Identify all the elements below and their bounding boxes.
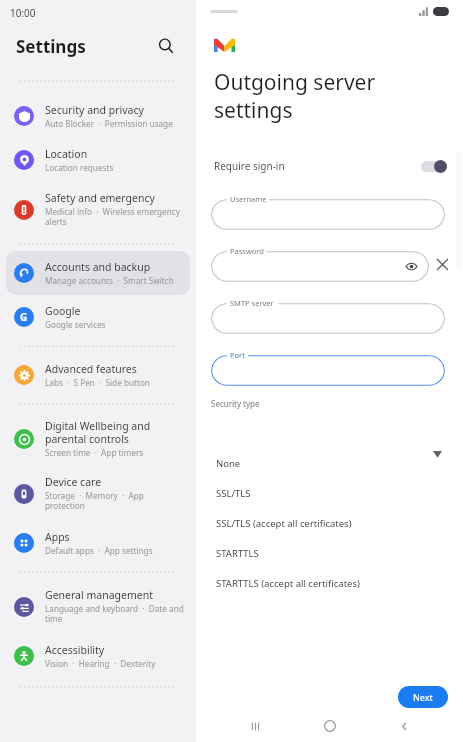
button[interactable]: SSL/TLS (accept all certificates) bbox=[206, 508, 426, 538]
button[interactable]: None bbox=[206, 448, 426, 478]
staticText: Accessibility bbox=[45, 643, 105, 657]
button[interactable]: Digital Wellbeing and parental controls bbox=[6, 411, 190, 466]
button[interactable]: STARTTLS (accept all certificates) bbox=[206, 568, 426, 598]
staticText: Device care bbox=[45, 475, 102, 489]
button[interactable]: Accounts and backup bbox=[6, 251, 190, 295]
button[interactable]: Next bbox=[398, 686, 448, 708]
staticText: Safety and emergency bbox=[45, 191, 155, 205]
staticText: Advanced features bbox=[45, 362, 137, 376]
staticText: Vision · Hearing · Dexterity bbox=[45, 658, 156, 669]
staticText: Auto Blocker · Permission usage bbox=[45, 118, 173, 129]
staticText: Manage accounts · Smart Switch bbox=[45, 275, 174, 286]
staticText: Apps bbox=[45, 530, 70, 544]
staticText: STARTTLS bbox=[216, 547, 259, 560]
staticText: Default apps · App settings bbox=[45, 545, 153, 556]
staticText: Next bbox=[413, 691, 433, 703]
staticText: 10:00 bbox=[10, 6, 36, 20]
staticText: Digital Wellbeing and parental controls bbox=[45, 419, 151, 446]
staticText: STARTTLS (accept all certificates) bbox=[216, 577, 360, 590]
staticText: Location requests bbox=[45, 162, 114, 173]
staticText: Location bbox=[45, 147, 88, 161]
button[interactable] bbox=[211, 251, 429, 282]
staticText: Require sign-in bbox=[214, 159, 285, 173]
staticText: Google bbox=[45, 304, 81, 318]
staticText: Storage · Memory · App protection bbox=[45, 490, 144, 512]
staticText: Port bbox=[230, 350, 245, 360]
button[interactable] bbox=[211, 199, 445, 230]
staticText: SMTP server bbox=[230, 298, 274, 308]
button[interactable]: Recents bbox=[240, 711, 270, 741]
button[interactable]: Home bbox=[315, 711, 345, 741]
staticText: G bbox=[20, 310, 28, 324]
staticText: Labs · S Pen · Side button bbox=[45, 377, 150, 388]
staticText: None bbox=[216, 457, 241, 470]
staticText: Security type bbox=[211, 398, 260, 409]
staticText: Security and privacy bbox=[45, 103, 144, 117]
button[interactable]: Search bbox=[152, 32, 180, 60]
button[interactable]: Back bbox=[389, 711, 419, 741]
button[interactable]: Clear bbox=[429, 251, 455, 277]
button[interactable]: Advanced features bbox=[6, 353, 190, 397]
button[interactable]: G bbox=[6, 295, 190, 339]
staticText: SSL/TLS (accept all certificates) bbox=[216, 517, 352, 530]
button[interactable]: Safety and emergency bbox=[6, 182, 190, 237]
staticText: Outgoing server settings bbox=[214, 68, 376, 124]
staticText: Password bbox=[230, 246, 264, 256]
button[interactable]: Accessibility bbox=[6, 634, 190, 678]
staticText: Medical info · Wireless emergency alerts bbox=[45, 206, 180, 228]
staticText: Google services bbox=[45, 319, 106, 330]
staticText: General management bbox=[45, 588, 153, 602]
button[interactable]: Require sign-in bbox=[196, 152, 463, 180]
button[interactable]: General management bbox=[6, 579, 190, 634]
button[interactable]: Device care bbox=[6, 466, 190, 521]
staticText: Screen time · App timers bbox=[45, 447, 144, 458]
button[interactable]: Apps bbox=[6, 521, 190, 565]
button[interactable]: Security and privacy bbox=[6, 94, 190, 138]
staticText: Language and keyboard · Date and time bbox=[45, 603, 184, 625]
staticText: Username bbox=[230, 194, 267, 204]
button[interactable] bbox=[211, 355, 445, 386]
button[interactable]: STARTTLS bbox=[206, 538, 426, 568]
button[interactable]: SSL/TLS bbox=[206, 478, 426, 508]
button[interactable] bbox=[421, 160, 447, 173]
staticText: SSL/TLS bbox=[216, 487, 251, 500]
button[interactable]: Location bbox=[6, 138, 190, 182]
button[interactable] bbox=[211, 303, 445, 334]
staticText: Accounts and backup bbox=[45, 260, 151, 274]
staticText: Settings bbox=[16, 35, 86, 58]
